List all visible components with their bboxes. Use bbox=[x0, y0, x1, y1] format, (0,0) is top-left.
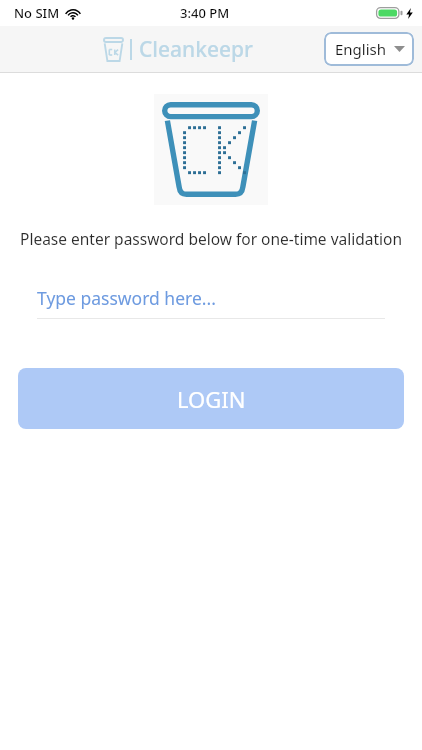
other: Cleankeepr logo bbox=[103, 37, 124, 62]
button[interactable]: LOGIN bbox=[18, 368, 404, 429]
staticText: LOGIN bbox=[177, 384, 246, 414]
staticText: Cleankeepr bbox=[139, 35, 253, 64]
button[interactable]: English bbox=[324, 32, 414, 66]
other: Cleankeepr logo bbox=[162, 102, 260, 197]
staticText: 3:40 PM bbox=[180, 4, 230, 22]
button[interactable]: Type password here... bbox=[37, 286, 385, 319]
staticText: English bbox=[335, 39, 387, 59]
staticText: No SIM bbox=[14, 4, 60, 22]
staticText: Please enter password below for one-time… bbox=[10, 228, 412, 249]
staticText: Type password here... bbox=[37, 286, 216, 310]
